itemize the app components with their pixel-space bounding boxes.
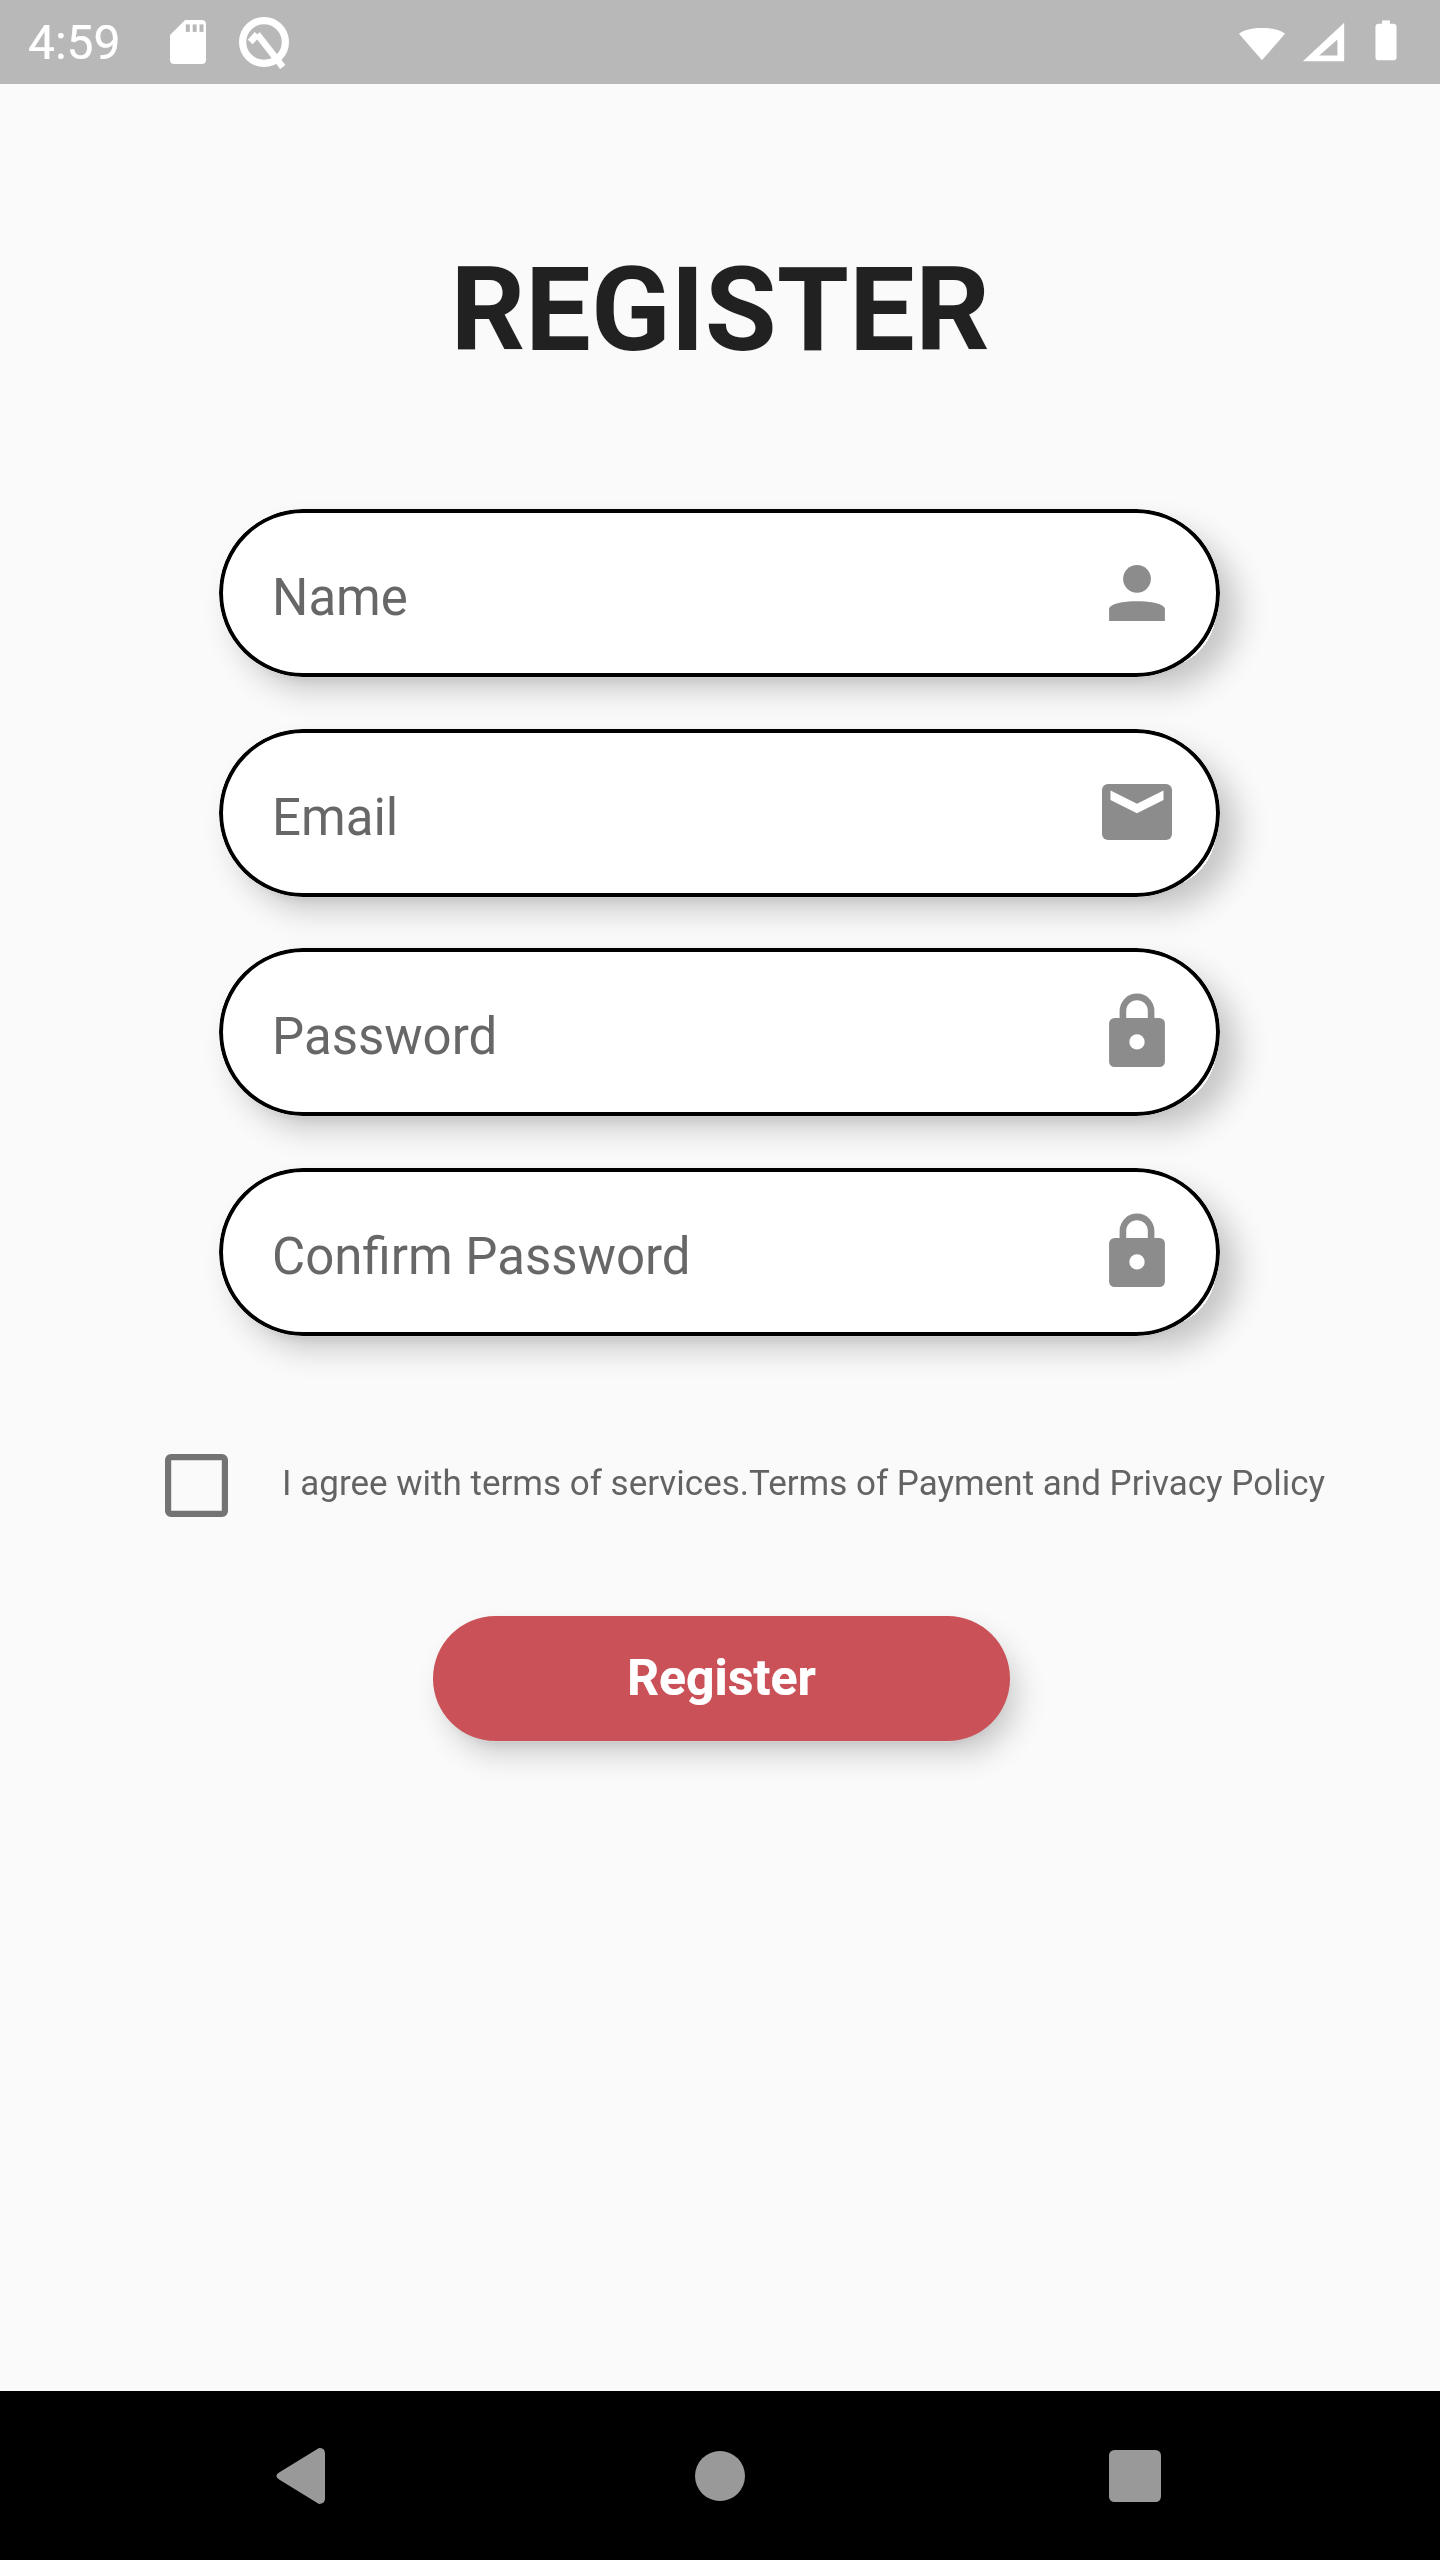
button[interactable]: Home xyxy=(640,2396,800,2556)
staticText: REGISTER xyxy=(0,241,1440,378)
staticText: Confirm Password xyxy=(272,1227,691,1287)
button[interactable]: Recent apps xyxy=(1055,2396,1215,2556)
staticText: Name xyxy=(272,568,408,628)
button[interactable]: I agree with terms of services.Terms of … xyxy=(0,1440,1440,1530)
staticText: I agree with terms of services.Terms of … xyxy=(282,1463,1326,1504)
button[interactable]: Register xyxy=(433,1616,1010,1741)
button[interactable]: Back xyxy=(220,2396,380,2556)
staticText: Password xyxy=(272,1007,498,1067)
staticText: Email xyxy=(272,788,399,848)
button[interactable]: Password xyxy=(219,948,1220,1116)
staticText: 4:59 xyxy=(28,14,121,70)
button[interactable]: Email xyxy=(219,729,1220,897)
button[interactable]: Confirm Password xyxy=(219,1168,1220,1336)
button[interactable]: Name xyxy=(219,509,1220,677)
staticText: Register xyxy=(627,1649,816,1708)
